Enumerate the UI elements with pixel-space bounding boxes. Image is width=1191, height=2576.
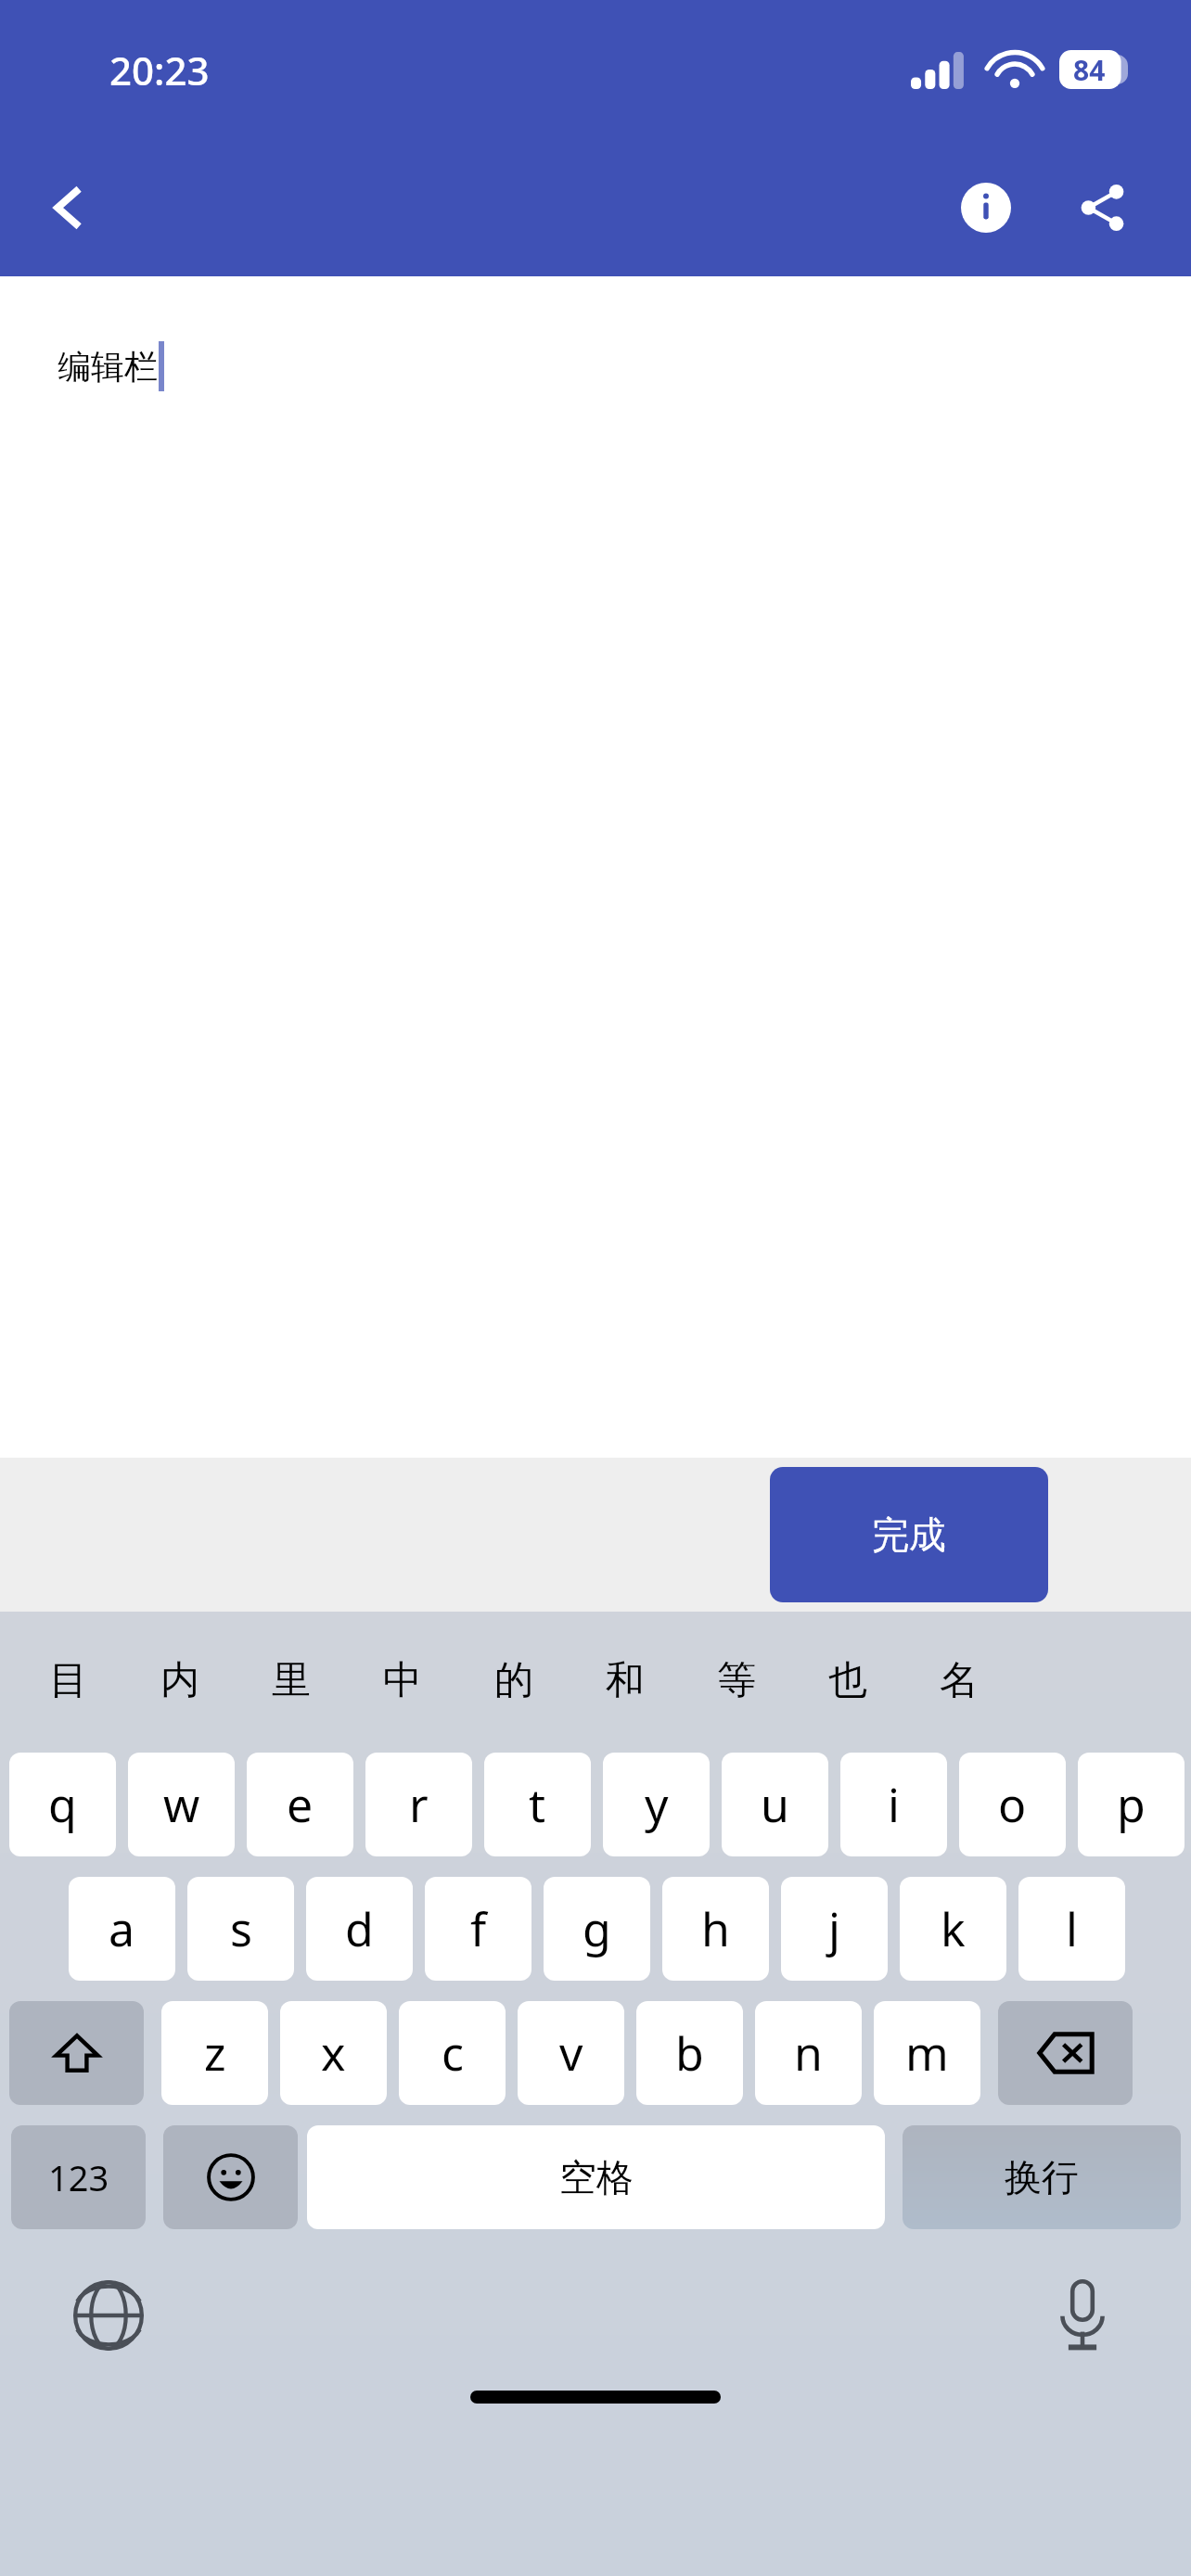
button[interactable]: Share — [1052, 157, 1154, 259]
staticText: m — [905, 2021, 949, 2085]
staticText: 123 — [48, 2153, 109, 2201]
button[interactable]: j — [781, 1877, 888, 1981]
button[interactable]: 123 — [11, 2125, 146, 2229]
button[interactable]: f — [425, 1877, 531, 1981]
staticText: f — [470, 1897, 487, 1960]
button[interactable]: q — [9, 1753, 116, 1856]
button[interactable]: Switch keyboard language — [58, 2264, 160, 2366]
staticText: r — [409, 1773, 429, 1836]
button[interactable]: v — [518, 2001, 624, 2105]
button[interactable]: p — [1078, 1753, 1185, 1856]
staticText: 内 — [160, 1656, 199, 1705]
button[interactable]: b — [636, 2001, 743, 2105]
staticText: w — [163, 1773, 200, 1836]
button[interactable]: n — [755, 2001, 862, 2105]
button[interactable]: z — [161, 2001, 268, 2105]
staticText: g — [583, 1897, 611, 1960]
staticText: 84 — [1073, 51, 1106, 89]
staticText: u — [761, 1773, 789, 1836]
button[interactable]: Back — [19, 157, 121, 259]
staticText: 里 — [272, 1656, 311, 1705]
staticText: t — [529, 1773, 546, 1836]
staticText: 换行 — [1005, 2154, 1079, 2200]
staticText: o — [998, 1773, 1027, 1836]
staticText: 也 — [828, 1656, 867, 1705]
staticText: j — [828, 1897, 840, 1960]
button[interactable]: a — [69, 1877, 175, 1981]
button[interactable]: Backspace — [998, 2001, 1133, 2105]
button[interactable]: m — [874, 2001, 980, 2105]
staticText: 中 — [383, 1656, 422, 1705]
button[interactable]: e — [247, 1753, 353, 1856]
button[interactable]: t — [484, 1753, 591, 1856]
staticText: s — [230, 1897, 252, 1960]
staticText: x — [321, 2021, 346, 2085]
staticText: 完成 — [872, 1511, 946, 1558]
button[interactable]: w — [128, 1753, 235, 1856]
staticText: 20:23 — [109, 44, 210, 96]
staticText: b — [675, 2021, 704, 2085]
button[interactable]: i — [840, 1753, 947, 1856]
staticText: q — [48, 1773, 77, 1836]
button[interactable]: y — [603, 1753, 710, 1856]
button[interactable]: c — [399, 2001, 506, 2105]
button[interactable]: s — [187, 1877, 294, 1981]
button[interactable]: Shift — [9, 2001, 144, 2105]
button[interactable]: Info — [935, 157, 1037, 259]
staticText: 编辑栏 — [58, 346, 158, 388]
button[interactable]: u — [722, 1753, 828, 1856]
staticText: e — [287, 1773, 314, 1836]
button[interactable]: h — [662, 1877, 769, 1981]
staticText: v — [559, 2021, 583, 2085]
button[interactable]: 完成 — [770, 1467, 1048, 1602]
staticText: y — [645, 1773, 669, 1836]
button[interactable]: Emoji — [163, 2125, 298, 2229]
button[interactable]: 目 — [13, 1612, 124, 1749]
staticText: l — [1066, 1897, 1078, 1960]
button[interactable]: 等 — [681, 1612, 792, 1749]
staticText: 空格 — [559, 2154, 634, 2200]
button[interactable]: k — [900, 1877, 1006, 1981]
staticText: a — [109, 1897, 135, 1960]
button[interactable]: d — [306, 1877, 413, 1981]
button[interactable]: 也 — [792, 1612, 903, 1749]
staticText: 的 — [494, 1656, 533, 1705]
button[interactable]: 的 — [458, 1612, 570, 1749]
staticText: 目 — [49, 1656, 88, 1705]
button[interactable]: g — [544, 1877, 650, 1981]
staticText: d — [345, 1897, 374, 1960]
staticText: 和 — [606, 1656, 645, 1705]
staticText: p — [1117, 1773, 1146, 1836]
button[interactable]: 名 — [903, 1612, 1015, 1749]
staticText: h — [701, 1897, 730, 1960]
staticText: z — [204, 2021, 226, 2085]
button[interactable]: 内 — [124, 1612, 236, 1749]
staticText: c — [442, 2021, 464, 2085]
button[interactable]: Voice input — [1031, 2264, 1133, 2366]
button[interactable]: x — [280, 2001, 387, 2105]
staticText: 名 — [940, 1656, 979, 1705]
button[interactable]: 里 — [236, 1612, 347, 1749]
button[interactable]: l — [1018, 1877, 1125, 1981]
staticText: k — [941, 1897, 966, 1960]
button[interactable]: o — [959, 1753, 1066, 1856]
button[interactable]: 空格 — [307, 2125, 885, 2229]
button[interactable]: 和 — [570, 1612, 681, 1749]
staticText: n — [794, 2021, 823, 2085]
staticText: 等 — [717, 1656, 756, 1705]
button[interactable]: r — [365, 1753, 472, 1856]
button[interactable]: 换行 — [903, 2125, 1181, 2229]
staticText: i — [888, 1773, 900, 1836]
button[interactable]: 中 — [347, 1612, 458, 1749]
